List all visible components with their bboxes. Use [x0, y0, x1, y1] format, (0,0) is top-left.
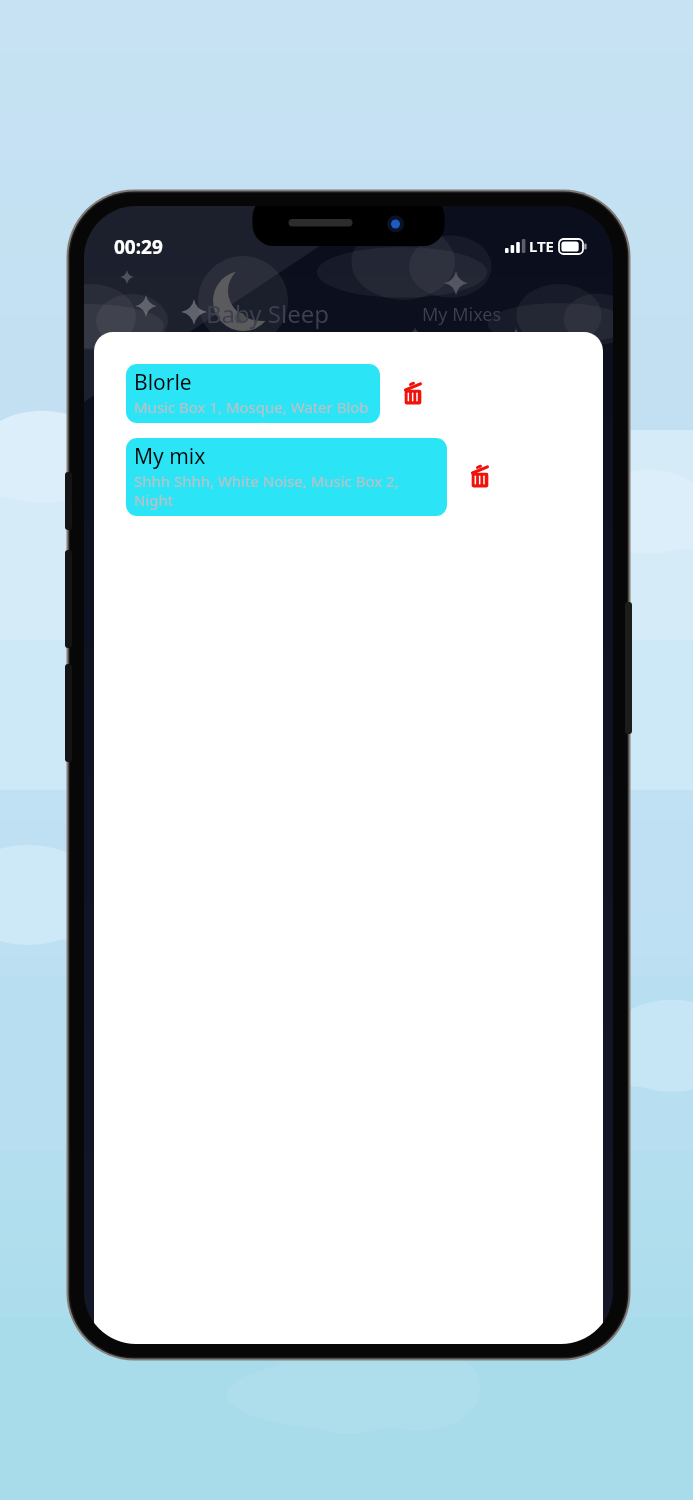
staticText: My mix: [134, 442, 206, 471]
button[interactable]: Delete mix: [394, 375, 432, 413]
staticText: My Mixes: [422, 302, 502, 327]
staticText: Baby Sleep: [206, 297, 330, 330]
button[interactable]: Delete mix: [461, 458, 499, 496]
staticText: 00:29: [114, 234, 163, 260]
button[interactable]: My mix: [126, 438, 447, 516]
button[interactable]: My Mixes: [422, 302, 502, 327]
staticText: Music Box 1, Mosque, Water Blob: [134, 397, 369, 417]
staticText: Shhh Shhh, White Noise, Music Box 2, Nig…: [134, 471, 399, 510]
button[interactable]: Blorle: [126, 364, 380, 423]
staticText: LTE: [529, 236, 554, 256]
staticText: Blorle: [134, 368, 192, 397]
